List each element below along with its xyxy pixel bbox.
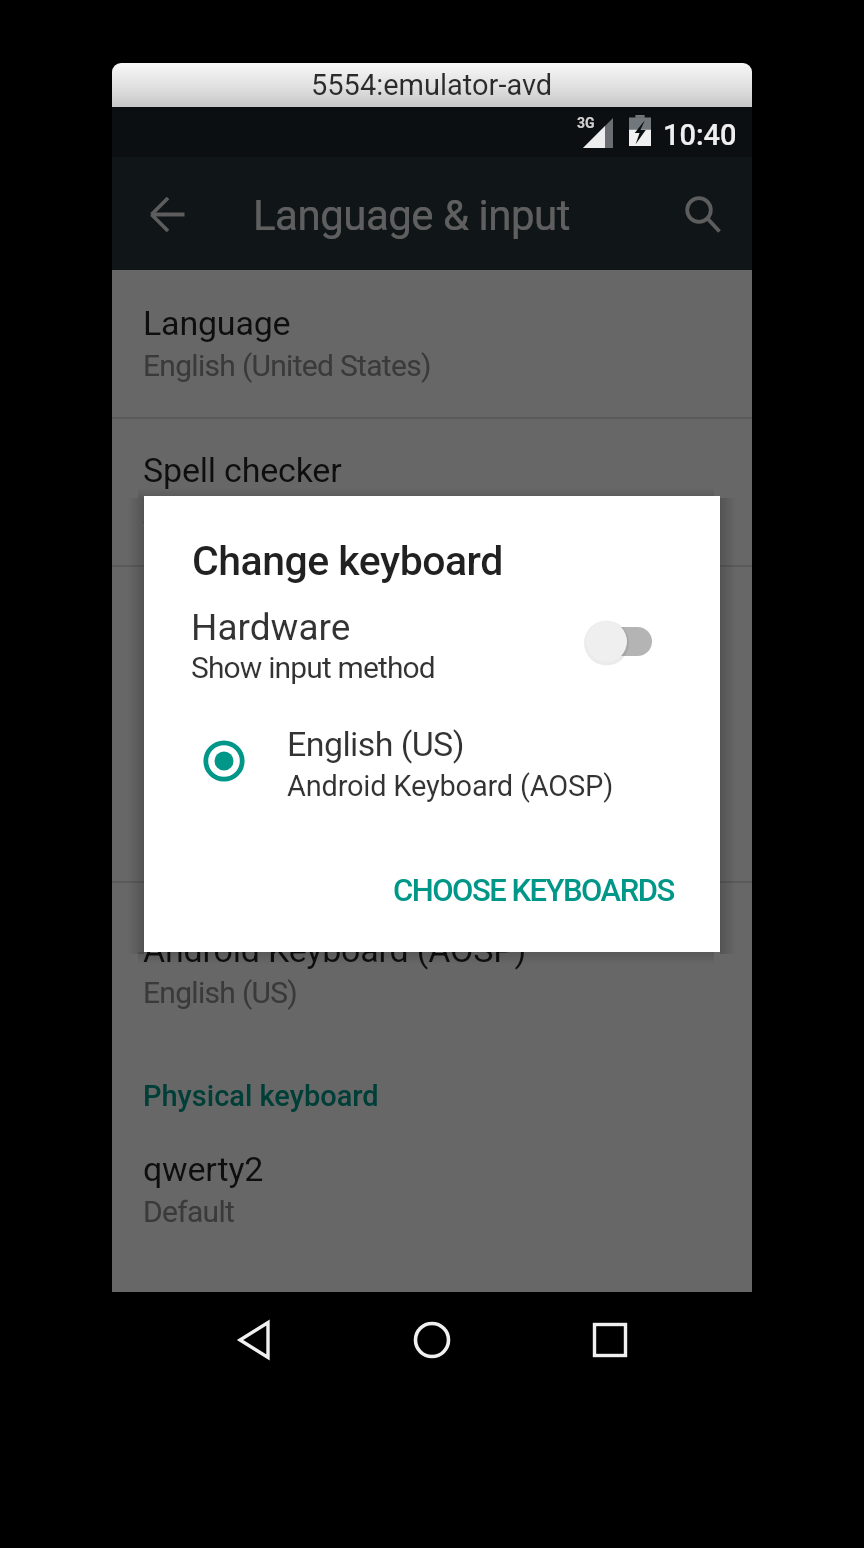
staticText: 5554:emulator-avd: [311, 68, 553, 102]
staticText: Show input method: [191, 650, 435, 685]
button[interactable]: Home: [372, 1292, 492, 1388]
staticText: Android Keyboard (AOSP): [287, 769, 614, 803]
staticText: English (US): [287, 724, 464, 764]
button[interactable]: CHOOSE KEYBOARDS: [370, 844, 696, 936]
staticText: English (US): [143, 975, 298, 1010]
button[interactable]: qwerty2: [112, 1123, 752, 1271]
button[interactable]: Search: [652, 157, 748, 270]
staticText: Keyboard & input methods: [143, 722, 486, 756]
button[interactable]: Recent apps: [550, 1292, 670, 1388]
staticText: Language: [143, 303, 291, 343]
button[interactable]: Back: [194, 1292, 314, 1388]
staticText: Physical keyboard: [143, 1079, 379, 1113]
button[interactable]: Current Keyboard: [112, 756, 752, 904]
button[interactable]: Navigate up: [120, 157, 216, 270]
staticText: CHOOSE KEYBOARDS: [393, 872, 674, 908]
staticText: Change keyboard: [192, 537, 503, 585]
button[interactable]: Android Keyboard (AOSP): [112, 904, 752, 1052]
staticText: English (United States): [143, 348, 431, 383]
staticText: Current Keyboard: [143, 782, 402, 822]
staticText: English (US) - Android Keyboard (AOSP): [143, 827, 645, 862]
button[interactable]: Show input method, off: [580, 613, 664, 671]
button[interactable]: English (US), selected: [200, 737, 248, 785]
staticText: Default: [143, 1194, 235, 1229]
button[interactable]: Personal dictionary: [112, 572, 752, 672]
staticText: Android Keyboard (AOSP): [143, 930, 527, 970]
staticText: Personal dictionary: [143, 598, 431, 638]
staticText: qwerty2: [143, 1149, 264, 1189]
staticText: Spell checker: [143, 450, 342, 490]
button[interactable]: Language: [112, 277, 752, 425]
staticText: 3G: [577, 115, 595, 131]
staticText: Android spell checker (AOSP): [143, 495, 516, 530]
staticText: Language & input: [253, 191, 570, 240]
staticText: 10:40: [663, 118, 737, 152]
staticText: Hardware: [191, 606, 351, 649]
button[interactable]: Spell checker: [112, 424, 752, 572]
